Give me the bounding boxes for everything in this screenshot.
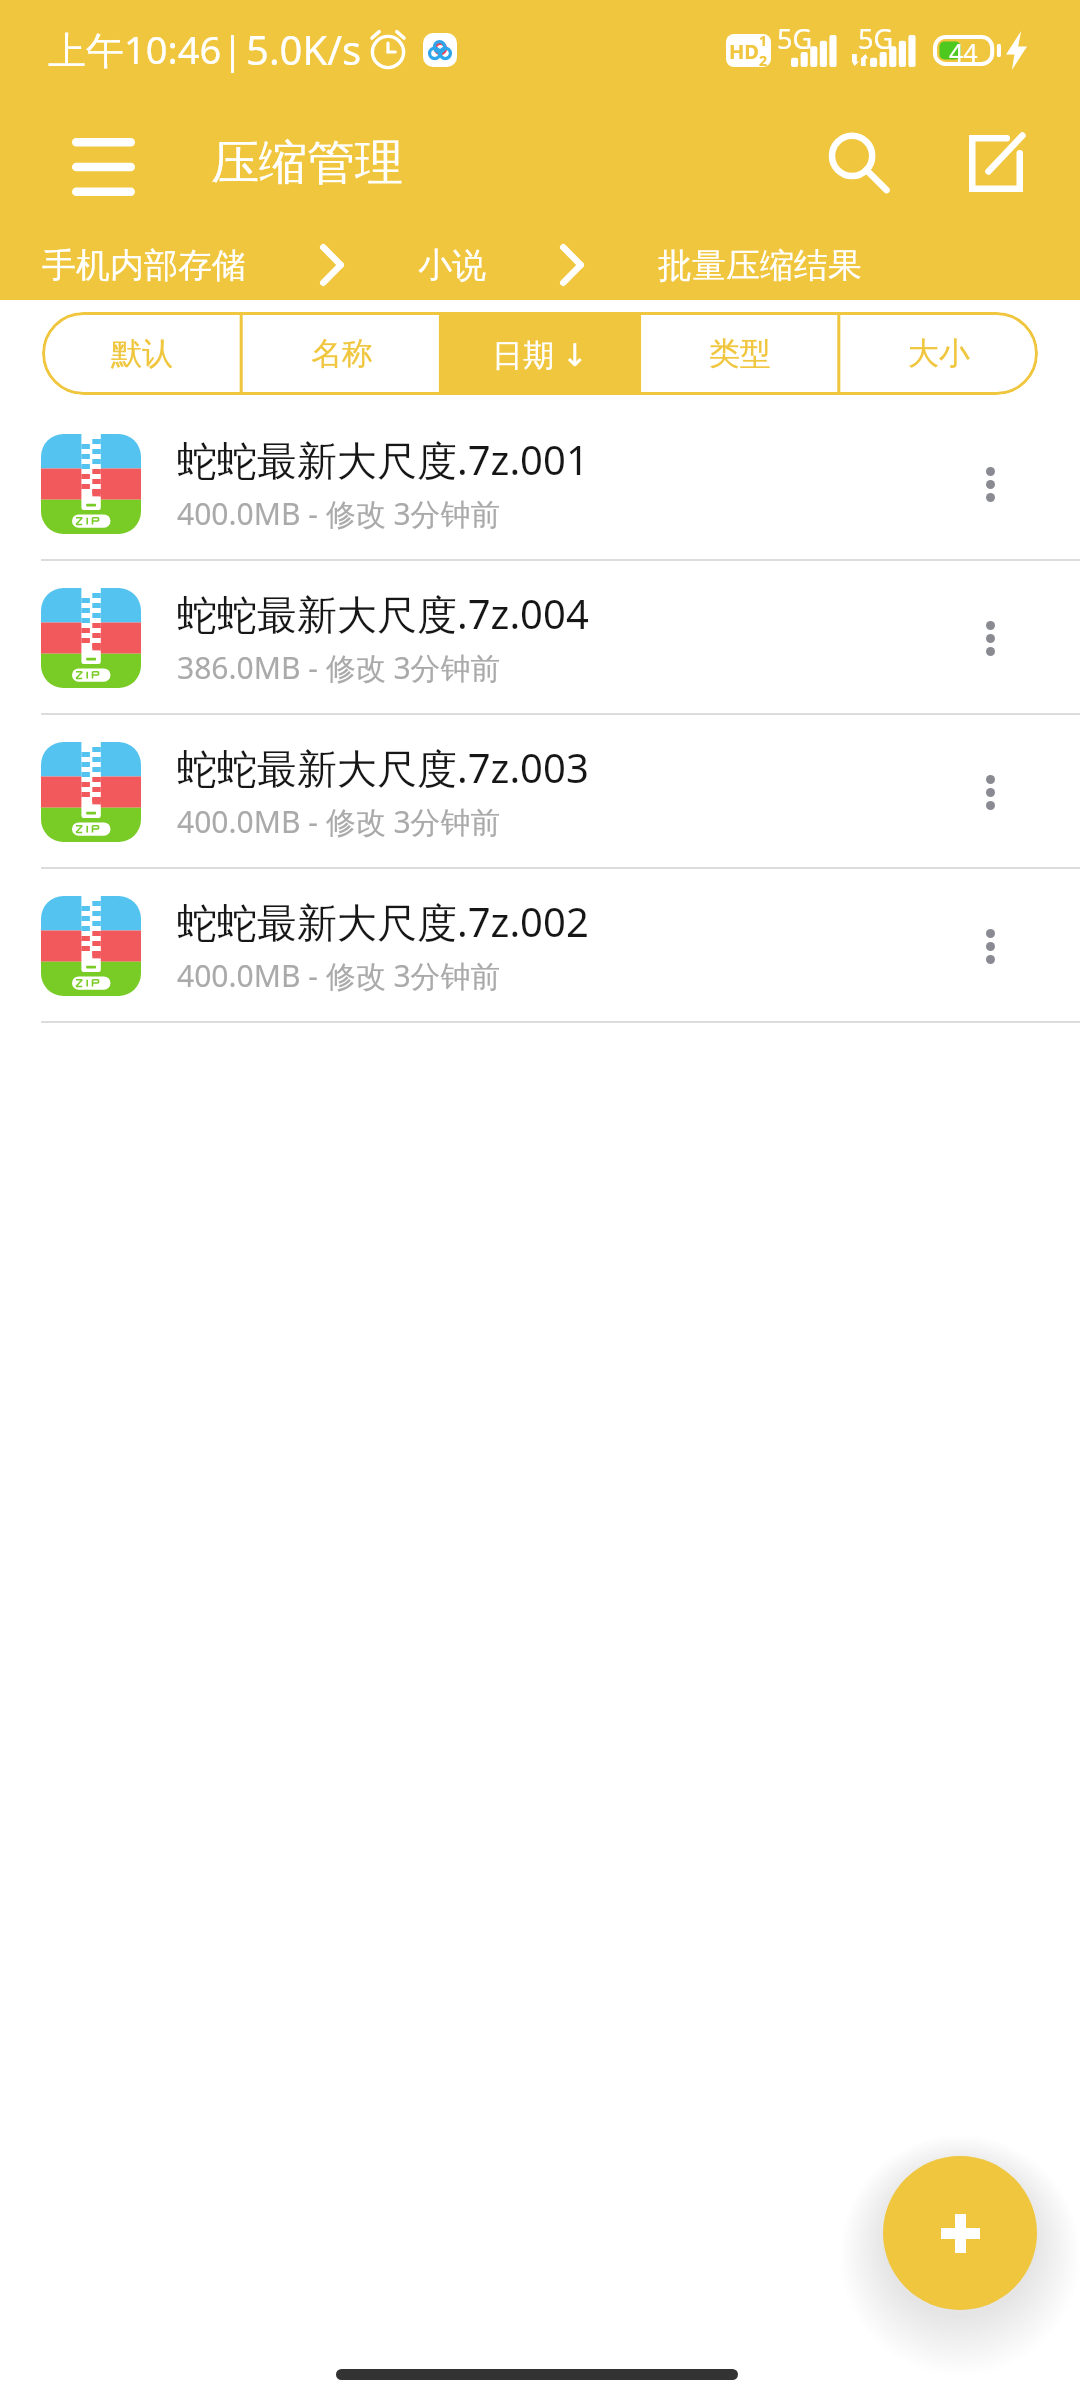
staticText: HD — [729, 38, 759, 65]
button[interactable]: 类型 — [640, 312, 839, 395]
staticText: 蛇蛇最新大尺度.7z.004 — [177, 586, 589, 641]
button[interactable]: 大小 — [839, 312, 1038, 395]
staticText: 400.0MB - 修改 3分钟前 — [177, 801, 501, 842]
button[interactable]: 默认 — [42, 312, 242, 395]
button[interactable]: 批量压缩结果 — [658, 235, 862, 295]
staticText: 2 — [759, 51, 768, 67]
button[interactable]: Add — [883, 2156, 1037, 2310]
staticText: 默认 — [111, 334, 173, 373]
staticText: 386.0MB - 修改 3分钟前 — [177, 647, 501, 688]
button[interactable]: 小说 — [418, 235, 486, 295]
staticText: 5G — [858, 20, 894, 57]
button[interactable]: 日期 ↓ — [441, 312, 640, 395]
button[interactable]: More options — [948, 424, 1032, 544]
button[interactable]: More options — [948, 886, 1032, 1006]
button[interactable]: Edit — [936, 103, 1056, 223]
staticText: 44 — [949, 35, 978, 69]
staticText: 类型 — [709, 334, 771, 373]
staticText: 1 — [759, 34, 768, 50]
button[interactable]: Menu — [48, 112, 158, 222]
staticText: 小说 — [418, 244, 486, 287]
staticText: 400.0MB - 修改 3分钟前 — [177, 955, 501, 996]
staticText: 蛇蛇最新大尺度.7z.001 — [177, 432, 589, 487]
button[interactable]: 蛇蛇最新大尺度.7z.002 — [0, 869, 1080, 1023]
staticText: 5G — [777, 20, 813, 57]
button[interactable]: 手机内部存储 — [42, 235, 246, 295]
button[interactable]: 蛇蛇最新大尺度.7z.003 — [0, 715, 1080, 869]
button[interactable]: 蛇蛇最新大尺度.7z.001 — [0, 407, 1080, 561]
button[interactable]: Search — [799, 104, 919, 224]
staticText: 批量压缩结果 — [658, 244, 862, 287]
staticText: | — [222, 23, 243, 75]
button[interactable]: 名称 — [242, 312, 441, 395]
button[interactable]: More options — [948, 732, 1032, 852]
staticText: 蛇蛇最新大尺度.7z.003 — [177, 740, 589, 795]
button[interactable]: 蛇蛇最新大尺度.7z.004 — [0, 561, 1080, 715]
staticText: 大小 — [908, 334, 970, 373]
staticText: 名称 — [311, 334, 373, 373]
staticText: 压缩管理 — [211, 133, 403, 193]
staticText: 400.0MB - 修改 3分钟前 — [177, 493, 501, 534]
button[interactable]: More options — [948, 578, 1032, 698]
staticText: 日期 ↓ — [492, 333, 589, 375]
staticText: 蛇蛇最新大尺度.7z.002 — [177, 894, 589, 949]
staticText: 上午10:46 — [48, 23, 222, 75]
staticText: 5.0K/s — [246, 22, 362, 76]
staticText: 手机内部存储 — [42, 244, 246, 287]
